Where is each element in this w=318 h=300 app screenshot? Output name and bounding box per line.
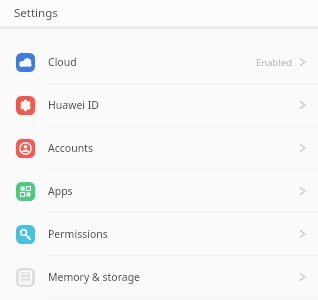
button[interactable]: Permissions bbox=[0, 213, 318, 255]
other: Permissions bbox=[16, 225, 35, 244]
staticText: Cloud bbox=[48, 55, 77, 69]
staticText: Enabled bbox=[256, 56, 292, 69]
button[interactable]: Accounts bbox=[0, 127, 318, 169]
other: Cloud bbox=[16, 53, 35, 72]
button[interactable]: Cloud bbox=[0, 41, 318, 83]
staticText: Permissions bbox=[48, 227, 108, 241]
staticText: Apps bbox=[48, 184, 73, 198]
other: Accounts bbox=[16, 139, 35, 158]
staticText: Huawei ID bbox=[48, 98, 99, 112]
staticText: Settings bbox=[14, 5, 58, 21]
staticText: Accounts bbox=[48, 141, 93, 155]
button[interactable]: Memory and storage bbox=[0, 256, 318, 298]
other: Huawei ID bbox=[16, 96, 35, 115]
other: Apps bbox=[16, 182, 35, 201]
staticText: Memory & storage bbox=[48, 270, 141, 284]
button[interactable]: Apps bbox=[0, 170, 318, 212]
button[interactable]: Huawei ID bbox=[0, 84, 318, 126]
other: Memory and storage bbox=[16, 268, 35, 287]
